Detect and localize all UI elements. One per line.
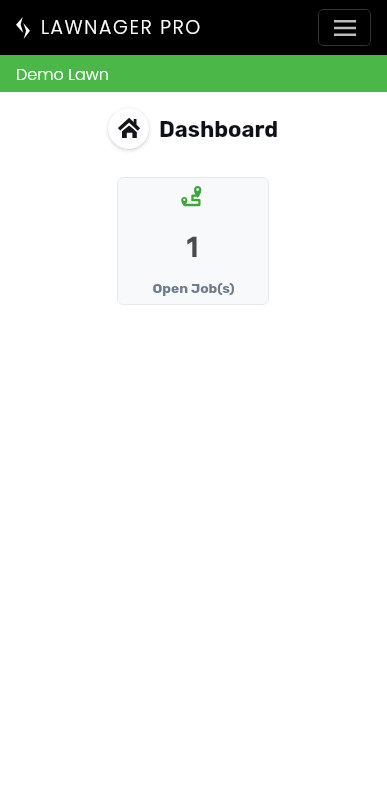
staticText: LAWNAGER PRO <box>41 14 202 41</box>
staticText: Open Job(s) <box>152 280 235 296</box>
staticText: Demo Lawn <box>16 63 109 85</box>
staticText: Dashboard <box>159 116 279 142</box>
button[interactable]: 1 <box>117 177 269 305</box>
staticText: 1 <box>187 225 199 273</box>
button[interactable]: Toggle navigation menu <box>318 9 371 46</box>
